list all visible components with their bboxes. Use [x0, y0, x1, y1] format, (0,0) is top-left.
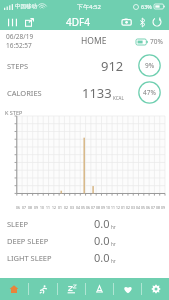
staticText: 03 — [70, 205, 74, 210]
staticText: 02 — [126, 205, 130, 210]
staticText: K STEP — [5, 109, 23, 116]
staticText: 06 — [16, 205, 20, 210]
staticText: 11 — [111, 205, 115, 210]
button[interactable]: Home — [0, 278, 28, 300]
button[interactable]: Heart rate — [114, 278, 141, 300]
staticText: 16:52:57 — [6, 41, 32, 50]
staticText: CALORIES — [7, 88, 42, 98]
button[interactable]: CALORIES — [0, 79, 169, 106]
staticText: 07 — [22, 205, 26, 210]
staticText: 04 — [136, 205, 140, 210]
button[interactable]: Bluetooth — [136, 16, 148, 28]
staticText: 05 — [141, 205, 145, 210]
button[interactable]: LIGHT SLEEP — [0, 249, 169, 266]
button[interactable]: DEEP SLEEP — [0, 232, 169, 249]
button[interactable]: Sleep — [58, 278, 85, 300]
staticText: 06 — [86, 205, 90, 210]
staticText: 08 — [28, 205, 32, 210]
staticText: KCAL — [113, 95, 124, 101]
staticText: 09 — [101, 205, 105, 210]
staticText: hr — [111, 241, 116, 247]
staticText: 4DF4 — [66, 15, 90, 29]
staticText: 08 — [96, 205, 100, 210]
button[interactable]: SLEEP — [0, 215, 169, 232]
staticText: 1133 — [82, 84, 112, 102]
button[interactable]: Activity — [29, 278, 57, 300]
staticText: HOME — [81, 35, 107, 47]
button[interactable]: Settings — [142, 278, 169, 300]
staticText: 01 — [58, 205, 62, 210]
staticText: 中国移动 — [15, 3, 37, 10]
staticText: 09 — [34, 205, 38, 210]
staticText: 0.0 — [94, 233, 110, 248]
staticText: hr — [111, 224, 116, 230]
staticText: 11 — [46, 205, 50, 210]
staticText: 07 — [91, 205, 95, 210]
staticText: 0.0 — [94, 250, 110, 265]
staticText: 47% — [143, 88, 156, 97]
staticText: 10 — [106, 205, 110, 210]
staticText: DEEP SLEEP — [7, 236, 49, 246]
staticText: 01 — [121, 205, 125, 210]
button[interactable]: Sync — [150, 15, 164, 29]
staticText: SLEEP — [7, 219, 28, 229]
staticText: 07 — [151, 205, 155, 210]
staticText: 下午4:52 — [77, 3, 101, 11]
staticText: 63% — [141, 3, 152, 10]
staticText: 10 — [40, 205, 44, 210]
staticText: 12 — [116, 205, 120, 210]
staticText: 06/28/19 — [6, 32, 34, 41]
staticText: 0.0 — [94, 216, 110, 231]
button[interactable]: Camera — [120, 15, 134, 29]
button[interactable]: Share — [22, 15, 36, 29]
button[interactable]: STEPS — [0, 52, 169, 79]
staticText: 05 — [81, 205, 85, 210]
staticText: 09 — [161, 205, 165, 210]
staticText: 9% — [145, 61, 155, 70]
staticText: 70% — [150, 37, 163, 46]
staticText: 04 — [76, 205, 80, 210]
staticText: 02 — [64, 205, 68, 210]
staticText: 912 — [101, 57, 124, 75]
staticText: STEPS — [7, 61, 29, 71]
button[interactable]: Menu — [5, 15, 19, 29]
staticText: 12 — [52, 205, 56, 210]
staticText: hr — [111, 258, 116, 264]
staticText: 06 — [146, 205, 150, 210]
button[interactable]: Alarm — [86, 278, 113, 300]
staticText: 03 — [131, 205, 135, 210]
staticText: 08 — [156, 205, 160, 210]
staticText: LIGHT SLEEP — [7, 253, 52, 263]
